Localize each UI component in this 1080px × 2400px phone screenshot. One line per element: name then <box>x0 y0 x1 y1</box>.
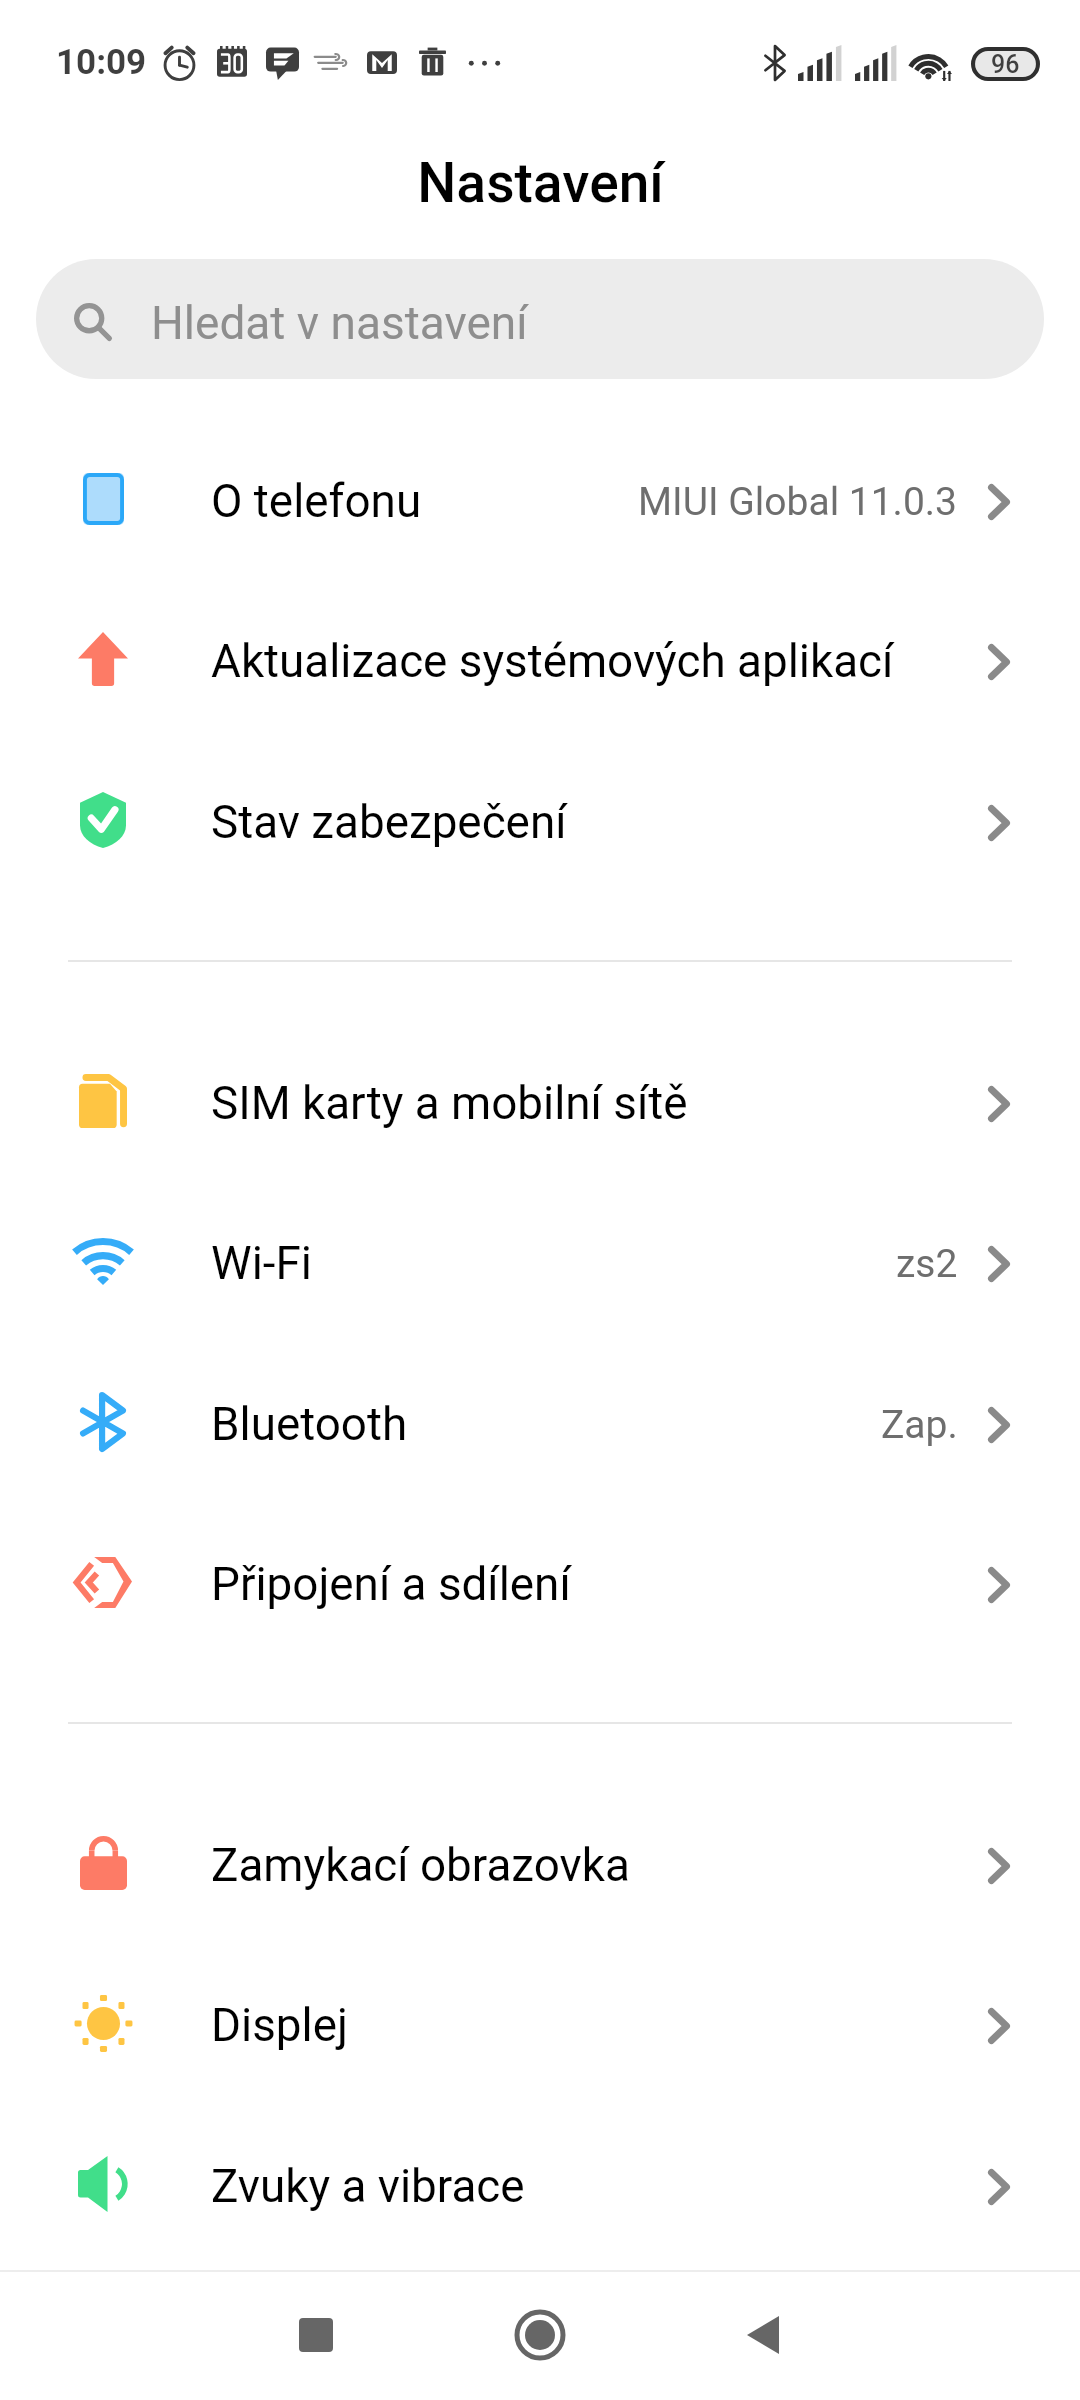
staticText: SIM karty a mobilní sítě <box>211 1077 688 1131</box>
staticText: O telefonu <box>211 475 422 529</box>
button[interactable]: Home <box>490 2285 590 2385</box>
button[interactable]: Hledat v nastavení <box>36 259 1044 379</box>
staticText: Zap. <box>881 1402 958 1448</box>
button[interactable]: Wi-Fi <box>0 1183 1080 1344</box>
staticText: Bluetooth <box>211 1398 408 1452</box>
staticText: Zvuky a vibrace <box>211 2160 525 2214</box>
staticText: Zamykací obrazovka <box>211 1839 630 1893</box>
staticText: Aktualizace systémových aplikací <box>211 635 894 689</box>
button[interactable]: Recent apps <box>266 2285 366 2385</box>
button[interactable]: O telefonu <box>0 421 1080 582</box>
button[interactable]: Back <box>713 2285 813 2385</box>
staticText: Displej <box>211 1999 348 2053</box>
button[interactable]: Stav zabezpečení <box>0 742 1080 903</box>
button[interactable]: Bluetooth <box>0 1344 1080 1505</box>
staticText: zs2 <box>896 1241 958 1287</box>
staticText: Hledat v nastavení <box>151 296 528 350</box>
staticText: 10:09 <box>56 42 147 82</box>
staticText: 96 <box>991 50 1020 79</box>
button[interactable]: SIM karty a mobilní sítě <box>0 1023 1080 1184</box>
button[interactable]: Displej <box>0 1945 1080 2106</box>
staticText: Wi-Fi <box>211 1237 312 1291</box>
staticText: Připojení a sdílení <box>211 1558 571 1612</box>
staticText: Nastavení <box>417 151 664 215</box>
staticText: MIUI Global 11.0.3 <box>638 479 958 525</box>
staticText: Stav zabezpečení <box>211 796 567 850</box>
button[interactable]: Zvuky a vibrace <box>0 2106 1080 2267</box>
button[interactable]: Aktualizace systémových aplikací <box>0 581 1080 742</box>
button[interactable]: Připojení a sdílení <box>0 1504 1080 1665</box>
button[interactable]: Zamykací obrazovka <box>0 1785 1080 1946</box>
